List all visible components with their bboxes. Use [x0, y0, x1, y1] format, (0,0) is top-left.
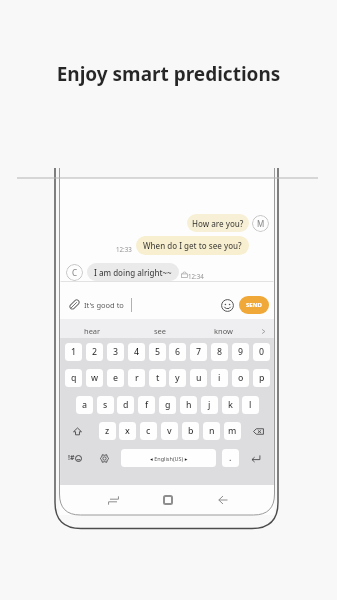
button[interactable]: Back	[215, 492, 231, 508]
button[interactable]: Shift	[69, 422, 86, 440]
staticText: n	[209, 425, 215, 437]
button[interactable]: n	[203, 422, 220, 440]
button[interactable]: w	[86, 369, 103, 387]
button[interactable]: l	[242, 396, 259, 414]
staticText: g	[165, 399, 171, 411]
button[interactable]: m	[224, 422, 241, 440]
staticText: r	[135, 372, 139, 384]
button[interactable]: r	[128, 369, 145, 387]
button[interactable]: 4	[128, 343, 145, 361]
button[interactable]: g	[159, 396, 176, 414]
button[interactable]: SEND	[239, 296, 269, 314]
button[interactable]: t	[149, 369, 166, 387]
staticText: x	[125, 425, 130, 437]
button[interactable]: 3	[107, 343, 124, 361]
button[interactable]: 9	[232, 343, 249, 361]
button[interactable]: When do I get to see you?	[136, 236, 249, 255]
button[interactable]: .	[222, 449, 239, 467]
button[interactable]: More suggestions	[257, 325, 269, 337]
staticText: 7	[196, 346, 202, 358]
button[interactable]: Symbols	[66, 449, 83, 467]
button[interactable]: 7	[190, 343, 207, 361]
button[interactable]: Attach	[69, 299, 80, 310]
button[interactable]: 2	[86, 343, 103, 361]
staticText: t	[156, 372, 160, 384]
staticText: b	[188, 425, 194, 437]
button[interactable]: I am doing alright~~	[87, 263, 179, 281]
staticText: hear	[84, 326, 101, 336]
button[interactable]: j	[201, 396, 218, 414]
button[interactable]: C	[66, 264, 83, 281]
staticText: ◂ English(US) ▸	[150, 455, 188, 462]
staticText: SEND	[246, 301, 262, 309]
button[interactable]: Home	[160, 492, 176, 508]
button[interactable]: Recents	[105, 492, 121, 508]
button[interactable]: v	[161, 422, 178, 440]
staticText: p	[259, 372, 265, 384]
button[interactable]: u	[190, 369, 207, 387]
staticText: How are you?	[192, 218, 244, 229]
button[interactable]: 8	[211, 343, 228, 361]
button[interactable]: p	[253, 369, 270, 387]
staticText: 3	[113, 346, 119, 358]
staticText: Enjoy smart predictions	[0, 61, 337, 87]
staticText: 5	[155, 346, 161, 358]
staticText: know	[214, 326, 233, 336]
staticText: It's good to	[84, 300, 124, 310]
button[interactable]: 5	[149, 343, 166, 361]
staticText: 1	[71, 346, 77, 358]
staticText: M	[257, 218, 265, 229]
staticText: 0	[259, 346, 265, 358]
button[interactable]: a	[76, 396, 93, 414]
staticText: h	[186, 399, 192, 411]
button[interactable]: 6	[169, 343, 186, 361]
staticText: I am doing alright~~	[94, 267, 172, 278]
staticText: 12:34	[188, 272, 204, 280]
button[interactable]: M	[252, 215, 269, 232]
button[interactable]: Settings	[96, 449, 113, 467]
staticText: u	[196, 372, 202, 384]
button[interactable]: hear	[76, 325, 108, 337]
button[interactable]: o	[232, 369, 249, 387]
button[interactable]: y	[169, 369, 186, 387]
button[interactable]: Emoji	[221, 299, 234, 312]
button[interactable]: h	[180, 396, 197, 414]
staticText: e	[113, 372, 119, 384]
button[interactable]: know	[206, 325, 240, 337]
staticText: o	[238, 372, 244, 384]
staticText: s	[103, 399, 108, 411]
button[interactable]: d	[117, 396, 134, 414]
button[interactable]: i	[211, 369, 228, 387]
staticText: C	[72, 267, 78, 278]
staticText: !#	[68, 453, 75, 463]
button[interactable]: f	[138, 396, 155, 414]
staticText: 4	[134, 346, 140, 358]
button[interactable]: c	[140, 422, 157, 440]
button[interactable]: 1	[65, 343, 82, 361]
button[interactable]: q	[65, 369, 82, 387]
staticText: a	[82, 399, 88, 411]
staticText: q	[71, 372, 77, 384]
staticText: v	[167, 425, 172, 437]
button[interactable]: k	[222, 396, 239, 414]
staticText: l	[249, 399, 252, 411]
button[interactable]: see	[144, 325, 176, 337]
button[interactable]: b	[182, 422, 199, 440]
button[interactable]: x	[119, 422, 136, 440]
staticText: i	[218, 372, 221, 384]
button[interactable]: ◂ English(US) ▸	[121, 449, 216, 467]
button[interactable]: How are you?	[187, 214, 249, 232]
staticText: .	[229, 452, 232, 464]
staticText: c	[146, 425, 151, 437]
button[interactable]: Enter	[247, 449, 264, 467]
staticText: see	[154, 326, 167, 336]
button[interactable]: 0	[253, 343, 270, 361]
button[interactable]: z	[99, 422, 116, 440]
staticText: j	[208, 399, 211, 411]
staticText: k	[228, 399, 233, 411]
button[interactable]: s	[97, 396, 114, 414]
button[interactable]: Delete	[250, 422, 267, 440]
staticText: w	[91, 372, 99, 384]
button[interactable]: e	[107, 369, 124, 387]
staticText: 2	[92, 346, 98, 358]
